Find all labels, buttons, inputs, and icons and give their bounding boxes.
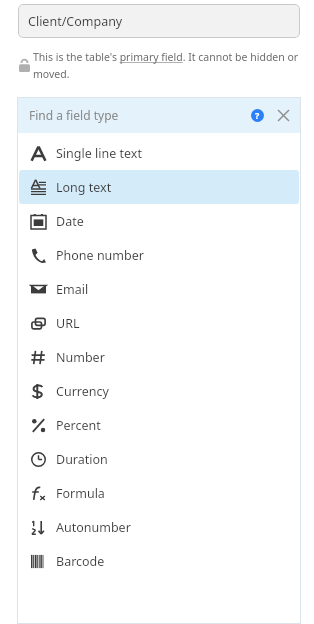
staticText: Client/Company (28, 13, 123, 30)
button[interactable]: Currency (19, 374, 299, 408)
button[interactable]: Percent (19, 408, 299, 442)
staticText: Phone number (56, 247, 144, 264)
staticText: Barcode (56, 553, 105, 570)
staticText: Find a field type (29, 107, 119, 123)
button[interactable]: Single line text (19, 136, 299, 170)
button[interactable]: Barcode (19, 544, 299, 578)
staticText: Autonumber (56, 519, 131, 536)
staticText: Currency (56, 383, 109, 400)
other: Locked (19, 59, 30, 72)
staticText: Percent (56, 417, 101, 434)
staticText: This is the table's primary field. It ca… (33, 50, 301, 81)
button[interactable]: Phone number (19, 238, 299, 272)
button[interactable]: Find a field type (17, 97, 301, 133)
staticText: Email (56, 281, 89, 298)
staticText: Long text (56, 179, 112, 196)
button[interactable]: Client/Company (18, 4, 300, 38)
staticText: ? (255, 109, 260, 121)
button[interactable]: Duration (19, 442, 299, 476)
staticText: Number (56, 349, 105, 366)
staticText: Formula (56, 485, 105, 502)
staticText: Duration (56, 451, 108, 468)
staticText: Single line text (56, 145, 142, 162)
button[interactable]: URL (19, 306, 299, 340)
button[interactable]: Help (247, 105, 267, 125)
button[interactable]: Email (19, 272, 299, 306)
button[interactable]: Date (19, 204, 299, 238)
button[interactable]: Long text (19, 170, 299, 204)
button[interactable]: Autonumber (19, 510, 299, 544)
staticText: Date (56, 213, 84, 230)
button[interactable]: Close (273, 105, 293, 125)
button[interactable]: Formula (19, 476, 299, 510)
button[interactable]: Number (19, 340, 299, 374)
staticText: URL (56, 315, 80, 332)
